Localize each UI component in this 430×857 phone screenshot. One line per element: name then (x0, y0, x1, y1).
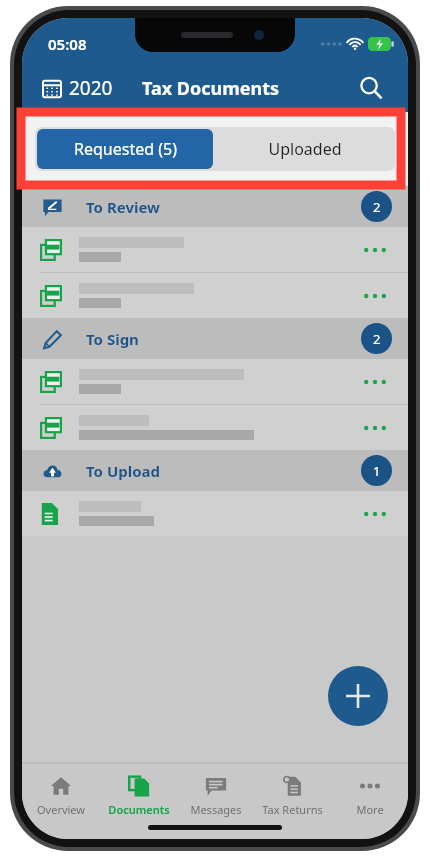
button[interactable]: More options (360, 367, 390, 397)
button[interactable]: To Upload (22, 450, 408, 491)
button[interactable]: 2020 (42, 75, 113, 101)
button[interactable]: More options (22, 405, 408, 450)
button[interactable]: More options (22, 491, 408, 536)
staticText: More (356, 802, 384, 817)
button[interactable]: More options (360, 413, 390, 443)
button[interactable]: More options (360, 235, 390, 265)
button[interactable]: To Sign (22, 318, 408, 359)
button[interactable]: To Review (22, 186, 408, 227)
button[interactable]: More options (360, 281, 390, 311)
staticText: 2020 (69, 75, 113, 101)
button[interactable]: Add document (328, 666, 388, 726)
staticText: Tax Returns (262, 802, 323, 817)
button[interactable]: More options (360, 499, 390, 529)
staticText: Uploaded (268, 138, 342, 160)
button[interactable]: Uploaded (215, 127, 395, 171)
staticText: Documents (108, 802, 170, 817)
button[interactable]: More options (22, 273, 408, 318)
staticText: 05:08 (48, 34, 87, 54)
button[interactable]: Documents (100, 771, 177, 819)
staticText: 1 (373, 462, 381, 480)
staticText: 2 (373, 198, 381, 216)
staticText: 2 (373, 330, 381, 348)
staticText: To Sign (86, 329, 139, 349)
button[interactable]: More options (22, 359, 408, 404)
button[interactable]: More options (22, 227, 408, 272)
button[interactable]: Overview (22, 771, 100, 819)
button[interactable]: Messages (177, 771, 254, 819)
button[interactable]: Requested (5) (37, 129, 213, 169)
staticText: Overview (37, 802, 85, 817)
button[interactable]: Tax Returns (254, 771, 331, 819)
staticText: To Review (86, 197, 160, 217)
staticText: Requested (5) (74, 138, 177, 160)
staticText: To Upload (86, 461, 161, 481)
staticText: Tax Documents (142, 76, 280, 101)
button[interactable]: Search (354, 71, 388, 105)
staticText: Messages (190, 802, 242, 817)
button[interactable]: More (331, 771, 408, 819)
